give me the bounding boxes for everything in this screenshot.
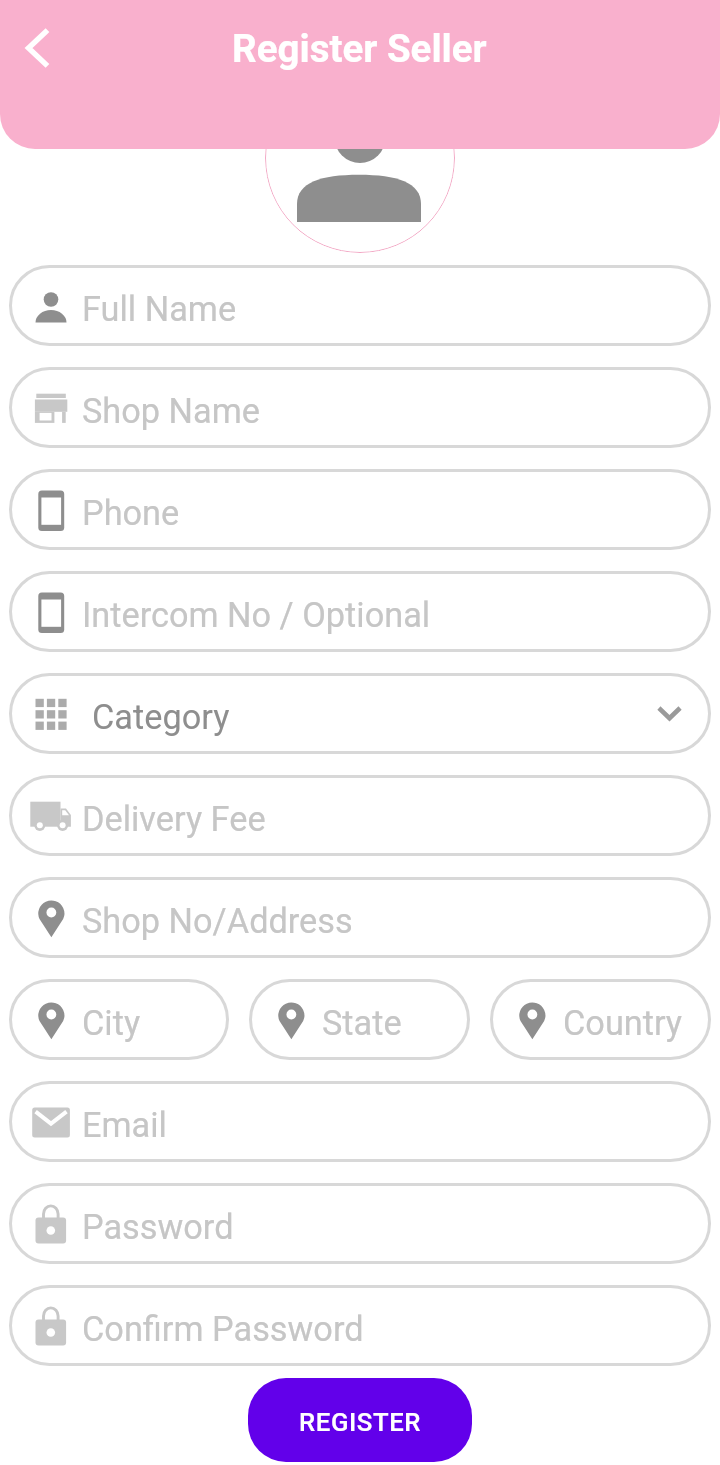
button[interactable]: Intercom No / Optional [9,571,711,652]
staticText: Shop No/Address [82,901,353,941]
staticText: State [322,1003,402,1043]
button[interactable]: Back [9,20,65,76]
button[interactable]: REGISTER [248,1378,472,1462]
button[interactable]: Email [9,1081,711,1162]
button[interactable]: Confirm Password [9,1285,711,1366]
button[interactable]: Country [490,979,711,1060]
staticText: Shop Name [82,391,260,431]
staticText: Phone [82,493,180,533]
staticText: REGISTER [299,1407,422,1437]
staticText: Email [82,1105,167,1145]
button[interactable]: Profile photo [265,63,455,253]
button[interactable]: Shop No/Address [9,877,711,958]
button[interactable]: Delivery Fee [9,775,711,856]
staticText: Intercom No / Optional [82,595,431,635]
button[interactable]: Phone [9,469,711,550]
button[interactable]: City [9,979,229,1060]
staticText: City [82,1003,141,1043]
button[interactable]: State [249,979,470,1060]
staticText: Full Name [82,289,237,329]
staticText: Password [82,1207,234,1247]
button[interactable]: Shop Name [9,367,711,448]
staticText: Delivery Fee [82,799,266,839]
staticText: Register Seller [232,26,487,71]
staticText: Country [563,1003,683,1043]
button[interactable]: Full Name [9,265,711,346]
staticText: Confirm Password [82,1309,364,1349]
button[interactable]: Category [9,673,711,754]
button[interactable]: Password [9,1183,711,1264]
staticText: Category [92,697,230,737]
